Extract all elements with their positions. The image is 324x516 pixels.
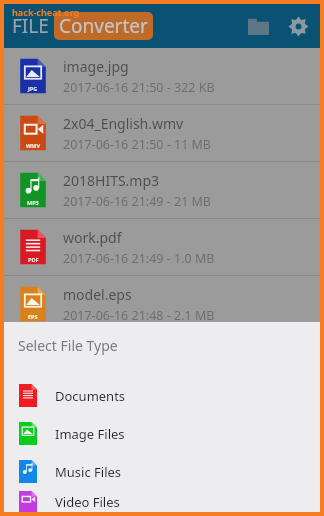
staticText: JPG: [28, 85, 38, 92]
staticText: 2018HITS.mp3: [63, 171, 160, 190]
button[interactable]: JPG: [4, 48, 320, 105]
button[interactable]: MP3: [4, 162, 320, 219]
staticText: WMV: [26, 142, 41, 149]
staticText: hack-cheat.org: [12, 6, 80, 18]
staticText: Image Files: [55, 425, 125, 443]
button[interactable]: EPS: [4, 276, 320, 333]
staticText: Music Files: [55, 463, 122, 481]
staticText: FILE: [12, 13, 49, 39]
staticText: Converter: [59, 13, 148, 39]
button[interactable]: Open folder: [238, 6, 278, 46]
staticText: 2x04_English.wmv: [63, 114, 184, 133]
button[interactable]: PDF: [4, 219, 320, 276]
staticText: Video Files: [55, 493, 120, 511]
staticText: Select File Type: [18, 336, 118, 355]
staticText: work.pdf: [63, 228, 122, 247]
button[interactable]: Image Files: [4, 415, 320, 452]
staticText: 2017-06-16 21:50 - 322 KB: [63, 79, 215, 96]
button[interactable]: Settings: [278, 6, 318, 46]
button[interactable]: Music Files: [4, 453, 320, 490]
staticText: 2017-06-16 21:48 - 2.1 MB: [63, 307, 215, 324]
staticText: Documents: [55, 387, 126, 405]
staticText: PDF: [28, 256, 39, 263]
button[interactable]: Video Files: [4, 491, 320, 512]
staticText: MP3: [27, 199, 39, 206]
staticText: EPS: [28, 313, 38, 320]
staticText: image.jpg: [63, 57, 129, 76]
staticText: 2017-06-16 21:49 - 21 MB: [63, 193, 211, 210]
button[interactable]: Documents: [4, 377, 320, 414]
staticText: 2017-06-16 21:50 - 11 MB: [63, 136, 211, 153]
staticText: model.eps: [63, 285, 132, 304]
staticText: 2017-06-16 21:49 - 1.0 MB: [63, 250, 215, 267]
button[interactable]: WMV: [4, 105, 320, 162]
